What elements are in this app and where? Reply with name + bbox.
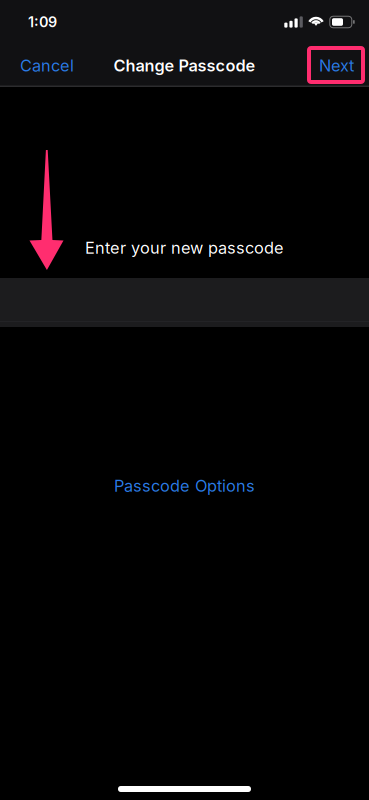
button[interactable]: Passcode Options: [0, 476, 369, 498]
staticText: Next: [319, 56, 354, 75]
staticText: Cancel: [20, 56, 74, 75]
button[interactable]: Cancel: [0, 47, 94, 84]
staticText: Passcode Options: [114, 476, 255, 496]
staticText: 1:09: [28, 13, 57, 31]
staticText: Change Passcode: [113, 56, 255, 75]
staticText: Enter your new passcode: [85, 238, 284, 258]
button[interactable]: Next: [297, 47, 369, 84]
